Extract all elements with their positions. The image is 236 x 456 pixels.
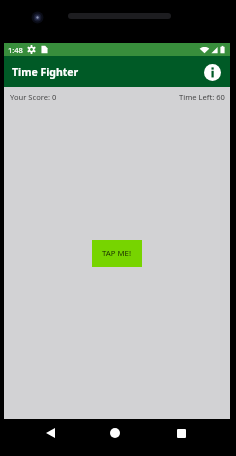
staticText: TAP ME! xyxy=(102,248,132,259)
staticText: Your Score: 0 xyxy=(10,92,57,102)
staticText: Time Fighter xyxy=(12,65,79,79)
button[interactable]: Recent apps xyxy=(167,419,195,447)
button[interactable]: TAP ME! xyxy=(92,240,142,267)
staticText: Time Left: 60 xyxy=(179,92,225,102)
staticText: 1:48 xyxy=(8,45,23,55)
button[interactable]: About xyxy=(199,59,225,85)
button[interactable]: Back xyxy=(36,419,64,447)
button[interactable]: Home xyxy=(101,419,129,447)
